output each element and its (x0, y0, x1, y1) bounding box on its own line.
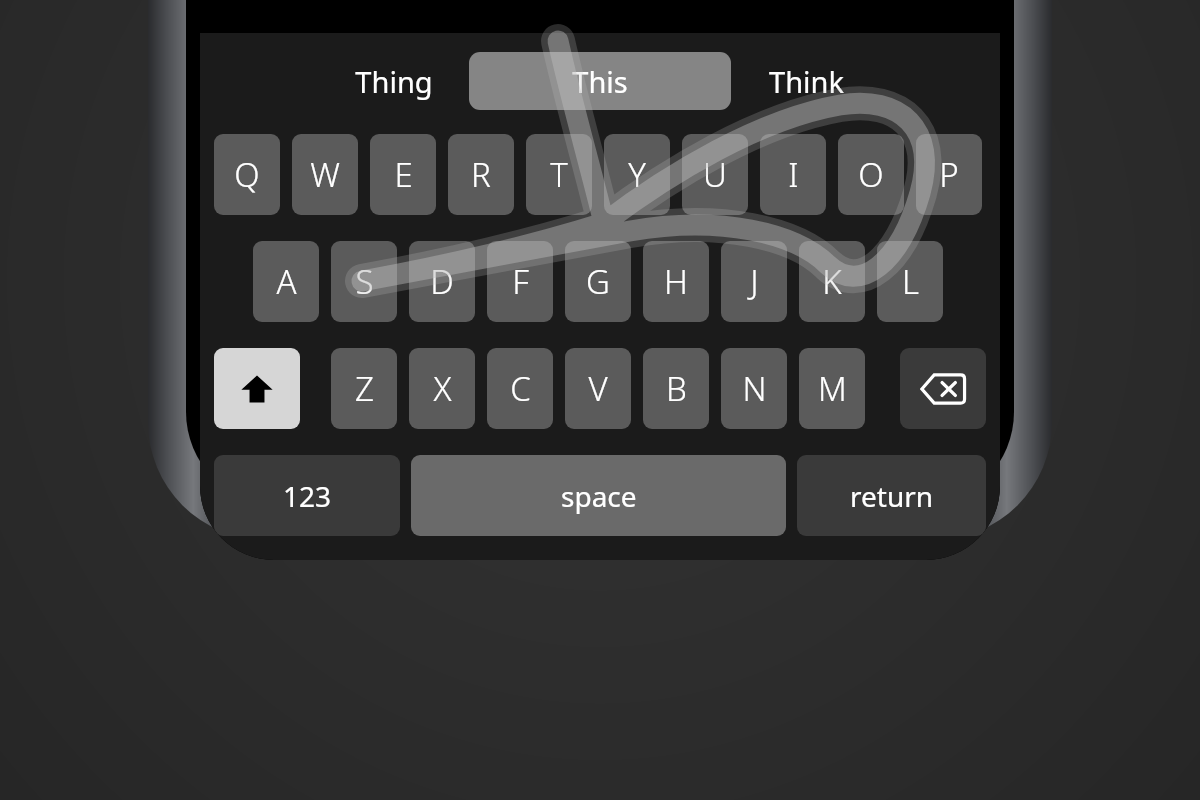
staticText: M (818, 366, 847, 411)
staticText: F (512, 259, 529, 304)
button[interactable]: L (877, 241, 943, 322)
staticText: Think (769, 62, 844, 101)
staticText: return (850, 477, 934, 515)
staticText: Q (234, 152, 260, 197)
button[interactable]: C (487, 348, 553, 429)
button[interactable]: Z (331, 348, 397, 429)
staticText: H (664, 259, 688, 304)
button[interactable]: N (721, 348, 787, 429)
staticText: K (822, 259, 842, 304)
staticText: space (561, 477, 637, 515)
staticText: B (666, 366, 687, 411)
staticText: Thing (355, 62, 433, 101)
staticText: W (310, 152, 340, 197)
button[interactable]: 123 (214, 455, 400, 536)
staticText: A (276, 259, 297, 304)
staticText: T (550, 152, 568, 197)
button[interactable]: A (253, 241, 319, 322)
button[interactable]: S (331, 241, 397, 322)
button[interactable]: return (797, 455, 986, 536)
button[interactable]: Backspace (900, 348, 986, 429)
button[interactable]: U (682, 134, 748, 215)
button[interactable]: M (799, 348, 865, 429)
staticText: V (588, 366, 608, 411)
button[interactable]: H (643, 241, 709, 322)
button[interactable]: Q (214, 134, 280, 215)
staticText: S (355, 259, 374, 304)
button[interactable]: X (409, 348, 475, 429)
button[interactable]: O (838, 134, 904, 215)
button[interactable]: This (469, 52, 731, 110)
staticText: X (433, 366, 452, 411)
staticText: This (572, 62, 628, 101)
staticText: Y (628, 152, 646, 197)
staticText: C (510, 366, 531, 411)
button[interactable]: D (409, 241, 475, 322)
button[interactable]: R (448, 134, 514, 215)
button[interactable]: E (370, 134, 436, 215)
staticText: I (788, 152, 799, 197)
button[interactable]: P (916, 134, 982, 215)
staticText: E (394, 152, 413, 197)
button[interactable]: Shift (214, 348, 300, 429)
button[interactable]: Thing (294, 52, 494, 110)
staticText: O (858, 152, 884, 197)
staticText: U (703, 152, 727, 197)
staticText: L (902, 259, 919, 304)
staticText: P (939, 152, 959, 197)
button[interactable]: G (565, 241, 631, 322)
button[interactable]: J (721, 241, 787, 322)
staticText: 123 (283, 477, 332, 515)
button[interactable]: Y (604, 134, 670, 215)
staticText: D (430, 259, 454, 304)
button[interactable]: space (411, 455, 786, 536)
staticText: J (750, 259, 759, 304)
button[interactable]: K (799, 241, 865, 322)
staticText: N (742, 366, 767, 411)
button[interactable]: B (643, 348, 709, 429)
button[interactable]: Think (706, 52, 906, 110)
button[interactable]: F (487, 241, 553, 322)
staticText: Z (355, 366, 374, 411)
button[interactable]: W (292, 134, 358, 215)
button[interactable]: I (760, 134, 826, 215)
button[interactable]: V (565, 348, 631, 429)
button[interactable]: T (526, 134, 592, 215)
staticText: G (586, 259, 610, 304)
staticText: R (471, 152, 491, 197)
